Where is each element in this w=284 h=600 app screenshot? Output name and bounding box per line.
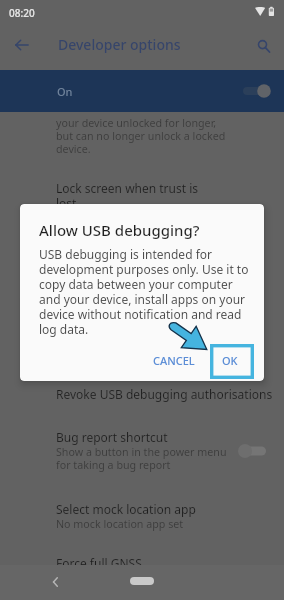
button[interactable]: Lock screen when trust is lost <box>0 172 284 222</box>
staticText: Show a button in the power menu for taki… <box>56 445 227 473</box>
button[interactable]: OK <box>208 343 251 377</box>
staticText: On <box>57 84 73 99</box>
staticText: Bug report shortcut <box>56 429 168 445</box>
staticText: Allow USB debugging? <box>39 220 200 240</box>
staticText: CANCEL <box>153 353 195 368</box>
staticText: USB debugging is intended for developmen… <box>39 246 249 338</box>
button[interactable]: Home <box>130 577 154 585</box>
button[interactable]: Back <box>43 570 67 594</box>
staticText: Select mock location app <box>56 501 196 517</box>
button[interactable]: Search <box>250 32 276 58</box>
button[interactable]: Bug report shortcut <box>0 420 284 482</box>
staticText: Revoke USB debugging authorisations <box>56 386 273 402</box>
staticText: your device unlocked for longer, but can… <box>56 116 226 157</box>
button[interactable]: Back <box>9 32 35 58</box>
staticText: Developer options <box>58 35 181 54</box>
button[interactable]: your device unlocked for longer, but can… <box>0 112 284 158</box>
button[interactable]: CANCEL <box>145 343 203 377</box>
button[interactable]: Force full GNSS <box>0 546 284 565</box>
button[interactable]: Revoke USB debugging authorisations <box>0 374 284 412</box>
button[interactable]: Select mock location app <box>0 492 284 540</box>
staticText: Lock screen when trust is lost <box>56 180 199 212</box>
staticText: Force full GNSS <box>56 555 142 565</box>
staticText: 08:20 <box>9 6 35 20</box>
staticText: OK <box>222 353 238 368</box>
staticText: No mock location app set <box>56 517 184 532</box>
